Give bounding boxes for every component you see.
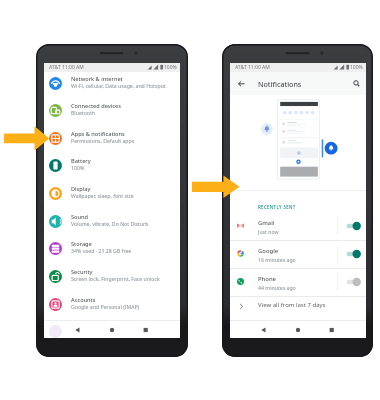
staticText: 16 minutes ago bbox=[258, 256, 296, 263]
staticText: Wallpaper, sleep, font size bbox=[71, 192, 134, 199]
button[interactable]: Google bbox=[230, 240, 366, 268]
staticText: AT&T 11:00 AM bbox=[235, 64, 270, 71]
staticText: Accounts bbox=[71, 296, 96, 304]
staticText: 34% used · 21.28 GB free bbox=[71, 247, 132, 254]
staticText: Wi-Fi, cellular, Data usage, and Hotspot bbox=[71, 82, 166, 89]
staticText: Just now bbox=[258, 228, 279, 235]
staticText: 100% bbox=[350, 64, 363, 71]
button[interactable]: Search bbox=[351, 78, 362, 89]
staticText: 44 minutes ago bbox=[258, 284, 296, 291]
staticText: Apps & notifications bbox=[71, 130, 125, 138]
staticText: Security bbox=[71, 268, 93, 276]
button[interactable]: View all from last 7 days bbox=[230, 296, 366, 318]
button[interactable]: Connected devices bbox=[44, 96, 180, 124]
button[interactable]: Storage bbox=[44, 234, 180, 262]
staticText: Google and Personal (IMAP) bbox=[71, 303, 140, 310]
button[interactable]: Back bbox=[236, 78, 247, 89]
staticText: Phone bbox=[258, 275, 276, 283]
staticText: Volume, vibrate, Do Not Disturb bbox=[71, 220, 149, 227]
button[interactable]: Toggle notifications for Google bbox=[343, 249, 363, 259]
staticText: Bluetooth bbox=[71, 109, 96, 116]
staticText: AT&T 11:00 AM bbox=[49, 64, 84, 71]
staticText: RECENTLY SENT bbox=[258, 204, 296, 210]
button[interactable]: Gmail bbox=[230, 212, 366, 240]
staticText: Sound bbox=[71, 213, 88, 221]
button[interactable]: Network & internet bbox=[44, 69, 180, 97]
staticText: Screen lock, Fingerprint, Face unlock bbox=[71, 275, 160, 282]
button[interactable]: Sound bbox=[44, 207, 180, 235]
button[interactable]: Toggle notifications for Gmail bbox=[343, 221, 363, 231]
staticText: View all from last 7 days bbox=[258, 301, 326, 309]
button[interactable]: Battery bbox=[44, 151, 180, 179]
button[interactable]: Apps & notifications bbox=[44, 124, 180, 152]
staticText: 100% bbox=[164, 64, 177, 71]
button[interactable]: Display bbox=[44, 179, 180, 207]
staticText: Network & internet bbox=[71, 75, 123, 83]
staticText: Display bbox=[71, 185, 91, 193]
staticText: Connected devices bbox=[71, 102, 121, 110]
button[interactable]: Toggle notifications for Phone bbox=[343, 277, 363, 287]
staticText: 100% bbox=[71, 164, 85, 171]
button[interactable]: Accounts bbox=[44, 290, 180, 318]
staticText: Battery bbox=[71, 157, 91, 165]
staticText: Notifications bbox=[258, 79, 302, 89]
staticText: Permissions, Default apps bbox=[71, 137, 135, 144]
button[interactable]: Phone bbox=[230, 268, 366, 296]
staticText: Storage bbox=[71, 240, 92, 248]
button[interactable]: Security bbox=[44, 262, 180, 290]
staticText: Google bbox=[258, 247, 279, 255]
staticText: Gmail bbox=[258, 219, 275, 227]
